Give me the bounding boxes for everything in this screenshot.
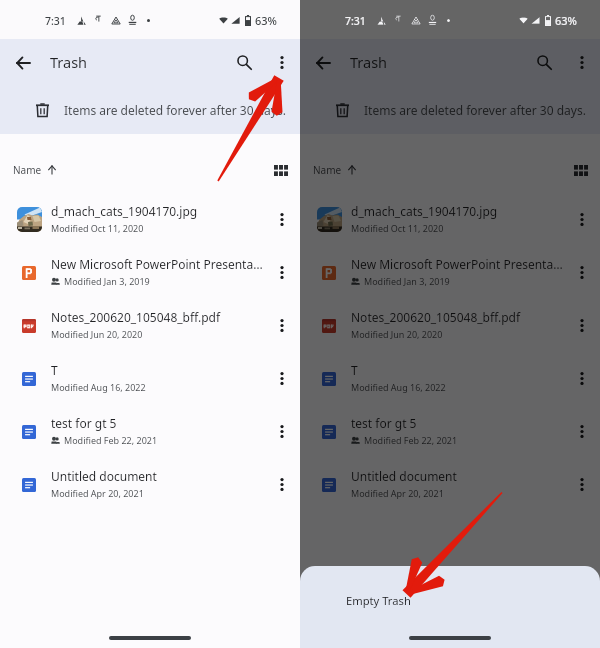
button[interactable]: T: [300, 352, 600, 405]
staticText: Modified Apr 20, 2021: [351, 487, 444, 499]
staticText: Modified Aug 16, 2022: [351, 381, 446, 393]
staticText: Modified Feb 22, 2021: [364, 434, 458, 446]
button[interactable]: More options: [264, 246, 300, 299]
staticText: 7:31: [45, 14, 66, 28]
staticText: New Microsoft PowerPoint Presentat…: [51, 256, 264, 272]
button[interactable]: More options: [264, 299, 300, 352]
staticText: Modified Jan 3, 2019: [364, 275, 450, 287]
staticText: 63%: [555, 13, 577, 28]
staticText: Items are deleted forever after 30 days.: [364, 102, 586, 118]
staticText: 63%: [255, 13, 277, 28]
button[interactable]: More options: [563, 39, 600, 86]
button[interactable]: More options: [264, 193, 300, 246]
staticText: Items are deleted forever after 30 days.: [64, 102, 286, 118]
button[interactable]: Notes_200620_105048_bff.pdf: [300, 299, 600, 352]
button[interactable]: test for gt 5: [0, 405, 300, 458]
staticText: T: [351, 362, 358, 378]
staticText: d_mach_cats_1904170.jpg: [351, 203, 498, 219]
staticText: Modified Jun 20, 2020: [351, 328, 443, 340]
staticText: Modified Oct 11, 2020: [51, 222, 144, 234]
staticText: T: [51, 362, 58, 378]
button[interactable]: Notes_200620_105048_bff.pdf: [0, 299, 300, 352]
staticText: Modified Aug 16, 2022: [51, 381, 146, 393]
staticText: Notes_200620_105048_bff.pdf: [351, 309, 521, 325]
button[interactable]: Name: [300, 157, 364, 183]
staticText: 63%: [555, 13, 577, 28]
button[interactable]: New Microsoft PowerPoint Presentat…: [300, 246, 600, 299]
staticText: Name: [13, 163, 42, 177]
staticText: Empty Trash: [346, 593, 411, 608]
staticText: test for gt 5: [51, 415, 117, 431]
button[interactable]: More options: [564, 246, 600, 299]
staticText: Untitled document: [51, 468, 157, 484]
staticText: Trash: [350, 52, 388, 72]
button[interactable]: Back: [0, 39, 46, 86]
button[interactable]: More options: [564, 405, 600, 458]
staticText: Name: [313, 163, 342, 177]
button[interactable]: More options: [264, 405, 300, 458]
button[interactable]: T: [0, 352, 300, 405]
button[interactable]: More options: [564, 352, 600, 405]
button[interactable]: More options: [263, 39, 300, 86]
button[interactable]: Untitled document: [0, 458, 300, 511]
staticText: Modified Oct 11, 2020: [351, 222, 444, 234]
staticText: Modified Jun 20, 2020: [51, 328, 143, 340]
button[interactable]: New Microsoft PowerPoint Presentat…: [0, 246, 300, 299]
staticText: Trash: [50, 52, 88, 72]
button[interactable]: More options: [564, 299, 600, 352]
button[interactable]: Grid view: [263, 157, 299, 183]
staticText: Notes_200620_105048_bff.pdf: [51, 309, 221, 325]
button[interactable]: Back: [300, 39, 346, 86]
staticText: New Microsoft PowerPoint Presentat…: [351, 256, 564, 272]
button[interactable]: test for gt 5: [300, 405, 600, 458]
button[interactable]: More options: [564, 193, 600, 246]
staticText: Modified Jan 3, 2019: [64, 275, 150, 287]
staticText: Modified Feb 22, 2021: [64, 434, 158, 446]
button[interactable]: d_mach_cats_1904170.jpg: [0, 193, 300, 246]
button[interactable]: Search: [521, 39, 563, 86]
button[interactable]: More options: [564, 458, 600, 511]
button[interactable]: d_mach_cats_1904170.jpg: [300, 193, 600, 246]
staticText: test for gt 5: [351, 415, 417, 431]
staticText: Untitled document: [351, 468, 457, 484]
button[interactable]: Empty Trash: [300, 566, 600, 626]
button[interactable]: Search: [221, 39, 263, 86]
staticText: Modified Apr 20, 2021: [51, 487, 144, 499]
staticText: 7:31: [345, 14, 366, 28]
button[interactable]: More options: [264, 458, 300, 511]
button[interactable]: Untitled document: [300, 458, 600, 511]
button[interactable]: Name: [0, 157, 64, 183]
button[interactable]: Grid view: [563, 157, 599, 183]
staticText: 7:31: [345, 14, 366, 28]
button[interactable]: More options: [264, 352, 300, 405]
staticText: d_mach_cats_1904170.jpg: [51, 203, 198, 219]
